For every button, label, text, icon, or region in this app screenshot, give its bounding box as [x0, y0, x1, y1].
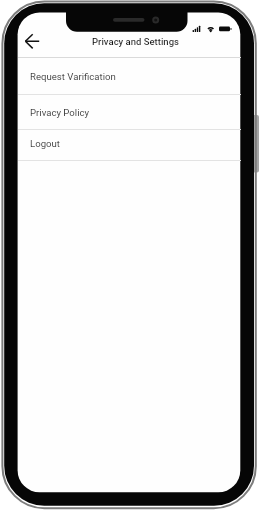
staticText: Privacy Policy: [30, 107, 90, 118]
button[interactable]: [19, 28, 45, 54]
button[interactable]: Logout: [18, 130, 241, 160]
staticText: Request Varification: [30, 71, 116, 82]
button[interactable]: Privacy Policy: [18, 95, 241, 129]
button[interactable]: Request Varification: [18, 58, 241, 94]
staticText: Privacy and Settings: [92, 36, 179, 47]
staticText: Logout: [30, 138, 60, 149]
